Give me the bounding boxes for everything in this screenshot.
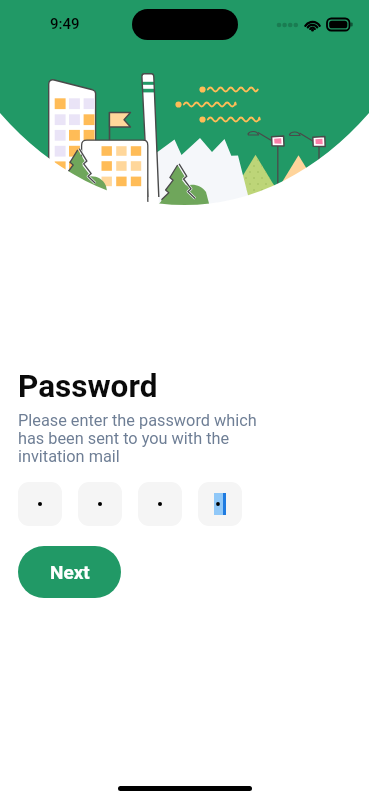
button[interactable]: Password digit 4 <box>198 482 242 526</box>
button[interactable]: Next <box>18 546 121 598</box>
button[interactable]: Password digit 2 <box>78 482 122 526</box>
button[interactable]: Password digit 3 <box>138 482 182 526</box>
staticText: Password <box>18 368 158 405</box>
button[interactable]: Password digit 1 <box>18 482 62 526</box>
staticText: 9:49 <box>50 15 80 33</box>
staticText: Please enter the password which has been… <box>18 411 257 466</box>
staticText: Next <box>50 561 90 583</box>
